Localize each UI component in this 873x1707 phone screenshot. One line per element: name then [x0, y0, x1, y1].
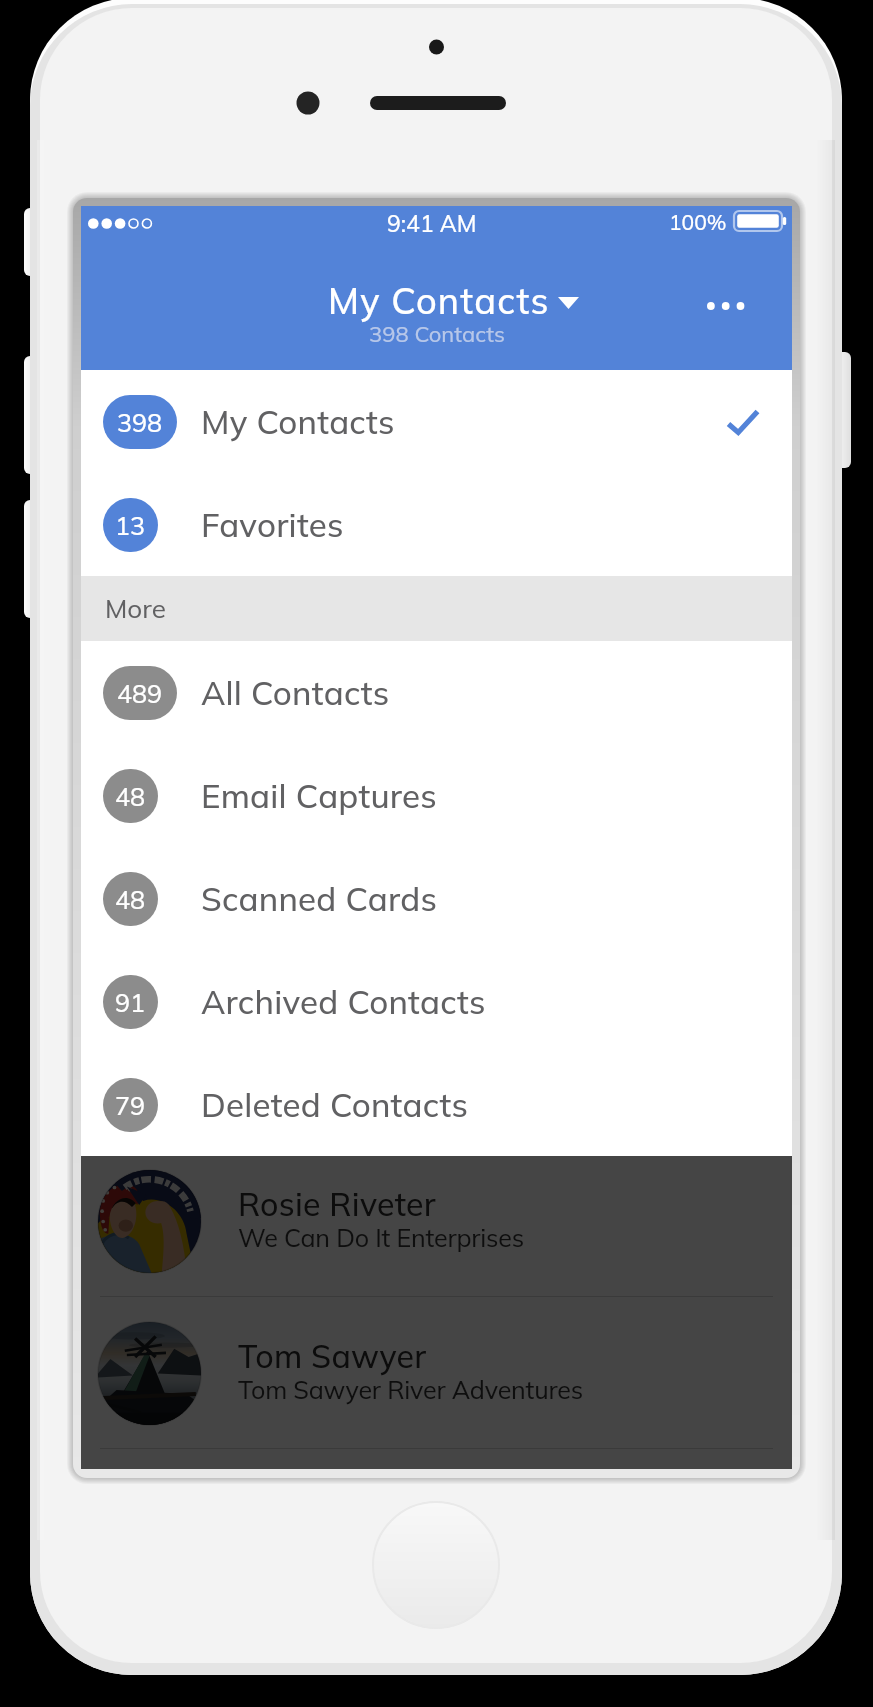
button[interactable]: 91: [81, 950, 792, 1053]
button[interactable]: Rosie Riveter: [81, 1145, 792, 1297]
staticText: 91: [115, 987, 146, 1018]
staticText: Email Captures: [201, 775, 437, 816]
button[interactable]: 13: [81, 473, 792, 576]
button[interactable]: More options: [694, 274, 758, 338]
staticText: Tom Sawyer River Adventures: [238, 1374, 583, 1405]
staticText: Tom Sawyer: [238, 1336, 427, 1376]
staticText: My Contacts: [328, 278, 550, 323]
staticText: 48: [115, 781, 146, 812]
staticText: We Can Do It Enterprises: [238, 1222, 524, 1253]
button[interactable]: 398: [81, 370, 792, 473]
staticText: Deleted Contacts: [201, 1084, 469, 1125]
button[interactable]: Tom Sawyer: [81, 1297, 792, 1449]
staticText: 48: [115, 884, 146, 915]
staticText: All Contacts: [201, 672, 390, 713]
staticText: Rosie Riveter: [238, 1184, 436, 1224]
staticText: 79: [115, 1090, 146, 1121]
staticText: 398 Contacts: [369, 320, 505, 348]
staticText: Archived Contacts: [201, 981, 486, 1022]
staticText: 398: [117, 407, 163, 438]
staticText: 100%: [669, 209, 727, 235]
staticText: 13: [115, 510, 146, 541]
button[interactable]: 48: [81, 847, 792, 950]
staticText: Favorites: [201, 504, 344, 545]
staticText: 489: [117, 678, 163, 709]
button[interactable]: 48: [81, 744, 792, 847]
button[interactable]: 79: [81, 1053, 792, 1156]
button[interactable]: 489: [81, 641, 792, 744]
staticText: Scanned Cards: [201, 878, 438, 919]
staticText: My Contacts: [201, 401, 395, 442]
staticText: 9:41 AM: [387, 209, 477, 238]
staticText: More: [105, 592, 166, 625]
